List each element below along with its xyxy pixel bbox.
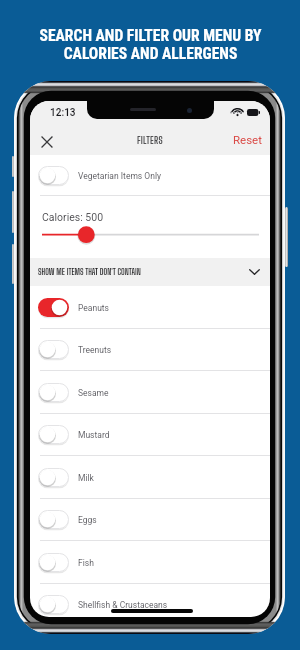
staticText: Milk — [78, 473, 94, 483]
button[interactable]: Toggle — [38, 595, 69, 614]
button[interactable]: Toggle — [30, 413, 270, 456]
button[interactable]: Toggle — [38, 383, 69, 402]
button[interactable]: Toggle — [30, 286, 270, 329]
button[interactable]: Toggle — [30, 583, 270, 617]
staticText: 12:13 — [50, 107, 76, 119]
staticText: Reset — [233, 133, 262, 146]
button[interactable]: Toggle — [30, 371, 270, 414]
staticText: Fish — [78, 558, 94, 568]
button[interactable]: Reset — [233, 126, 262, 152]
staticText: Eggs — [78, 515, 97, 525]
button[interactable]: Toggle — [30, 328, 270, 371]
staticText: SHOW ME ITEMS THAT DON'T CONTAIN — [38, 267, 141, 277]
button[interactable]: Close — [34, 129, 60, 155]
button[interactable]: Toggle — [38, 468, 69, 487]
button[interactable]: Toggle — [30, 155, 270, 196]
button[interactable]: Toggle — [38, 510, 69, 529]
staticText: Calories: 500 — [42, 211, 104, 223]
staticText: FILTERS — [137, 134, 163, 146]
button[interactable]: Toggle — [38, 298, 69, 317]
staticText: Sesame — [78, 388, 109, 398]
staticText: Peanuts — [78, 303, 109, 313]
button[interactable]: Toggle — [30, 498, 270, 541]
button[interactable]: Toggle — [30, 456, 270, 499]
button[interactable]: Toggle — [38, 340, 69, 359]
staticText: Shellfish & Crustaceans — [78, 600, 168, 610]
staticText: Mustard — [78, 430, 110, 440]
button[interactable]: Toggle — [38, 166, 69, 185]
staticText: Vegetarian Items Only — [78, 171, 161, 181]
staticText: SEARCH AND FILTER OUR MENU BY CALORIES A… — [39, 27, 262, 63]
button[interactable]: Toggle — [38, 553, 69, 572]
button[interactable]: SHOW ME ITEMS THAT DON'T CONTAIN — [30, 258, 270, 286]
button[interactable]: Toggle — [30, 541, 270, 584]
button[interactable]: Toggle — [38, 425, 69, 444]
staticText: Treenuts — [78, 345, 112, 355]
